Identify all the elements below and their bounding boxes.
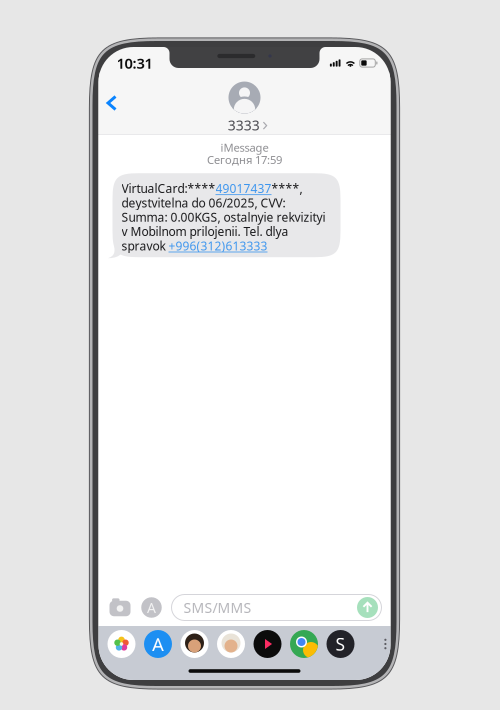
button[interactable]: Memoji [180,630,208,658]
staticText: A [147,598,156,617]
staticText: spravok [121,238,168,254]
staticText: SMS/MMS [183,598,251,617]
button[interactable]: Music [253,630,281,658]
staticText: S [335,632,345,656]
staticText: iMessage [220,140,268,155]
staticText: Summa: 0.00KGS, ostalnyie rekvizityi [121,209,325,225]
button[interactable]: App Store [140,596,162,618]
button[interactable]: App Store [144,630,172,658]
staticText: VirtualCard:**** [121,180,215,196]
button[interactable]: Camera [108,596,131,618]
button[interactable]: Contact 3333 details [225,72,264,134]
button[interactable]: Maps [290,630,318,658]
staticText: 3333 [228,116,260,134]
button[interactable]: Send [357,597,378,618]
staticText: Сегодня 17:59 [207,152,282,167]
button[interactable]: Memoji 2 [217,630,245,658]
button[interactable]: Photos [107,630,135,658]
button[interactable]: App [326,630,354,658]
button[interactable]: Back [98,81,135,125]
staticText: 49017437 [215,180,271,196]
staticText: ****, [271,180,302,196]
staticText: 10:31 [116,53,152,73]
staticText: deystvitelna do 06/2025, CVV: [121,195,285,211]
staticText: A [152,631,164,657]
staticText: +996(312)613333 [168,238,267,254]
staticText: v Mobilnom prilojenii. Tel. dlya [121,223,288,239]
